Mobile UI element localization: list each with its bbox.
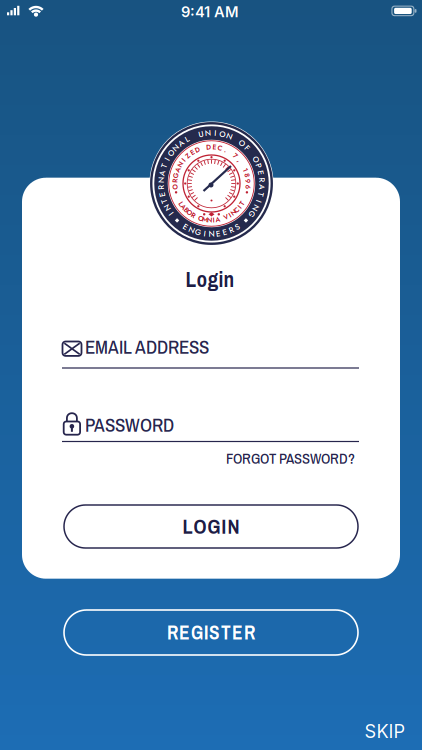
staticText: R E G I S T E R: [167, 619, 255, 645]
staticText: T: [240, 198, 244, 208]
button[interactable]: FORGOT PASSWORD?: [226, 449, 355, 468]
staticText: O: [172, 182, 178, 192]
staticText: I: [214, 127, 216, 139]
staticText: I: [239, 202, 241, 212]
staticText: O: [187, 208, 193, 218]
staticText: N: [208, 228, 214, 240]
staticText: E: [222, 226, 227, 238]
staticText: V: [223, 212, 228, 222]
staticText: D: [195, 145, 200, 155]
staticText: N: [164, 202, 170, 214]
staticText: L O G I N: [182, 513, 239, 540]
staticText: O: [198, 213, 204, 223]
staticText: B: [184, 205, 188, 215]
staticText: I: [204, 228, 206, 239]
button[interactable]: R E G I S T E R: [64, 610, 358, 655]
staticText: A: [259, 181, 265, 193]
staticText: I: [258, 195, 260, 207]
staticText: A: [178, 137, 184, 149]
staticText: D: [206, 142, 211, 152]
staticText: G: [195, 226, 201, 238]
staticText: ,: [238, 155, 240, 165]
staticText: R: [229, 224, 234, 236]
staticText: R: [159, 181, 164, 193]
staticText: FORGOT PASSWORD?: [226, 449, 355, 468]
staticText: N: [253, 202, 259, 214]
button[interactable]: SKIP: [364, 720, 405, 742]
staticText: N: [178, 160, 183, 170]
staticText: U: [198, 128, 203, 140]
staticText: R: [173, 176, 177, 186]
staticText: R: [191, 210, 195, 220]
staticText: R: [259, 174, 264, 186]
staticText: E: [212, 142, 216, 152]
staticText: I: [166, 154, 168, 165]
staticText: 9: [246, 176, 250, 186]
staticText: I: [229, 210, 231, 220]
staticText: A: [181, 202, 186, 212]
staticText: I: [183, 155, 185, 165]
staticText: 9:41 AM: [181, 3, 239, 21]
staticText: N: [189, 224, 195, 236]
staticText: E: [258, 167, 263, 179]
staticText: T: [259, 189, 263, 200]
staticText: G: [173, 170, 179, 180]
staticText: 8: [245, 170, 249, 180]
staticText: A: [159, 167, 165, 179]
staticText: 6: [246, 182, 250, 192]
button[interactable]: Password: [62, 407, 359, 443]
staticText: O: [253, 154, 259, 165]
staticText: 7: [233, 151, 237, 161]
staticText: E: [183, 221, 188, 233]
staticText: O: [219, 128, 225, 140]
staticText: T: [162, 195, 166, 207]
staticText: O: [239, 137, 245, 149]
staticText: I: [213, 215, 215, 225]
staticText: F: [245, 142, 249, 154]
staticText: E: [160, 189, 165, 200]
button[interactable]: Email Address: [62, 335, 359, 369]
staticText: N: [226, 130, 232, 142]
staticText: I: [170, 208, 172, 220]
staticText: A: [175, 165, 180, 175]
staticText: Z: [186, 151, 190, 161]
staticText: EMAIL ADDRESS: [85, 334, 209, 359]
staticText: N: [173, 142, 179, 154]
staticText: C: [234, 205, 239, 215]
staticText: E: [190, 147, 194, 157]
staticText: C: [218, 143, 223, 153]
staticText: 1: [244, 165, 247, 175]
staticText: N: [207, 215, 212, 225]
staticText: N: [158, 174, 164, 186]
staticText: T: [162, 160, 166, 172]
staticText: N: [205, 127, 211, 139]
staticText: M: [202, 214, 208, 224]
staticText: L: [179, 198, 182, 208]
staticText: E: [216, 228, 221, 239]
staticText: Login: [185, 265, 234, 294]
button[interactable]: L O G I N: [64, 505, 358, 548]
staticText: SKIP: [364, 720, 405, 742]
staticText: P: [256, 160, 261, 172]
staticText: L: [185, 133, 189, 145]
staticText: PASSWORD: [85, 412, 174, 438]
staticText: S: [235, 221, 240, 233]
staticText: .: [224, 145, 226, 155]
staticText: G: [249, 208, 255, 220]
staticText: O: [168, 147, 174, 159]
staticText: A: [215, 214, 220, 224]
staticText: N: [231, 208, 236, 218]
